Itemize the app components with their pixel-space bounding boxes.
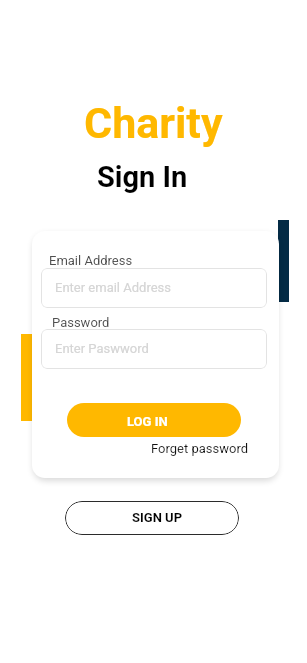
staticText: Sign In: [97, 160, 188, 194]
button[interactable]: Enter Paswword: [41, 329, 267, 369]
staticText: Password: [52, 315, 110, 330]
staticText: SIGN UP: [132, 510, 183, 525]
button[interactable]: SIGN UP: [65, 501, 239, 535]
staticText: Email Address: [49, 253, 133, 268]
staticText: Enter email Address: [55, 280, 171, 295]
staticText: LOG IN: [127, 414, 168, 429]
button[interactable]: Enter email Address: [41, 268, 267, 308]
button[interactable]: LOG IN: [67, 403, 241, 437]
staticText: Enter Paswword: [55, 341, 149, 356]
button[interactable]: Forget password: [151, 441, 249, 456]
staticText: Charity: [84, 98, 223, 148]
staticText: Forget password: [151, 441, 249, 456]
